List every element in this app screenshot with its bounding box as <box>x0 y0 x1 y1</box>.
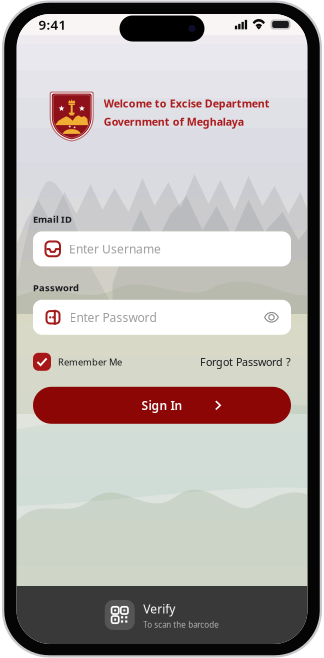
staticText: To scan the barcode <box>143 619 219 630</box>
button[interactable]: Verify <box>16 586 307 644</box>
staticText: Welcome to Excise Department <box>104 96 270 110</box>
staticText: 9:41 <box>38 16 66 33</box>
staticText: Verify <box>143 601 175 617</box>
staticText: Email ID <box>33 213 72 225</box>
button[interactable]: Remember Me <box>33 353 122 371</box>
button[interactable]: Forgot Password ? <box>200 355 291 369</box>
staticText: Government of Meghalaya <box>104 115 244 129</box>
staticText: Enter Username <box>69 241 161 257</box>
staticText: Enter Password <box>69 309 156 325</box>
staticText: Password <box>33 281 79 294</box>
staticText: Forgot Password ? <box>200 355 291 369</box>
staticText: Remember Me <box>58 356 122 368</box>
button[interactable]: Sign In <box>33 387 291 424</box>
staticText: Sign In <box>141 397 182 413</box>
